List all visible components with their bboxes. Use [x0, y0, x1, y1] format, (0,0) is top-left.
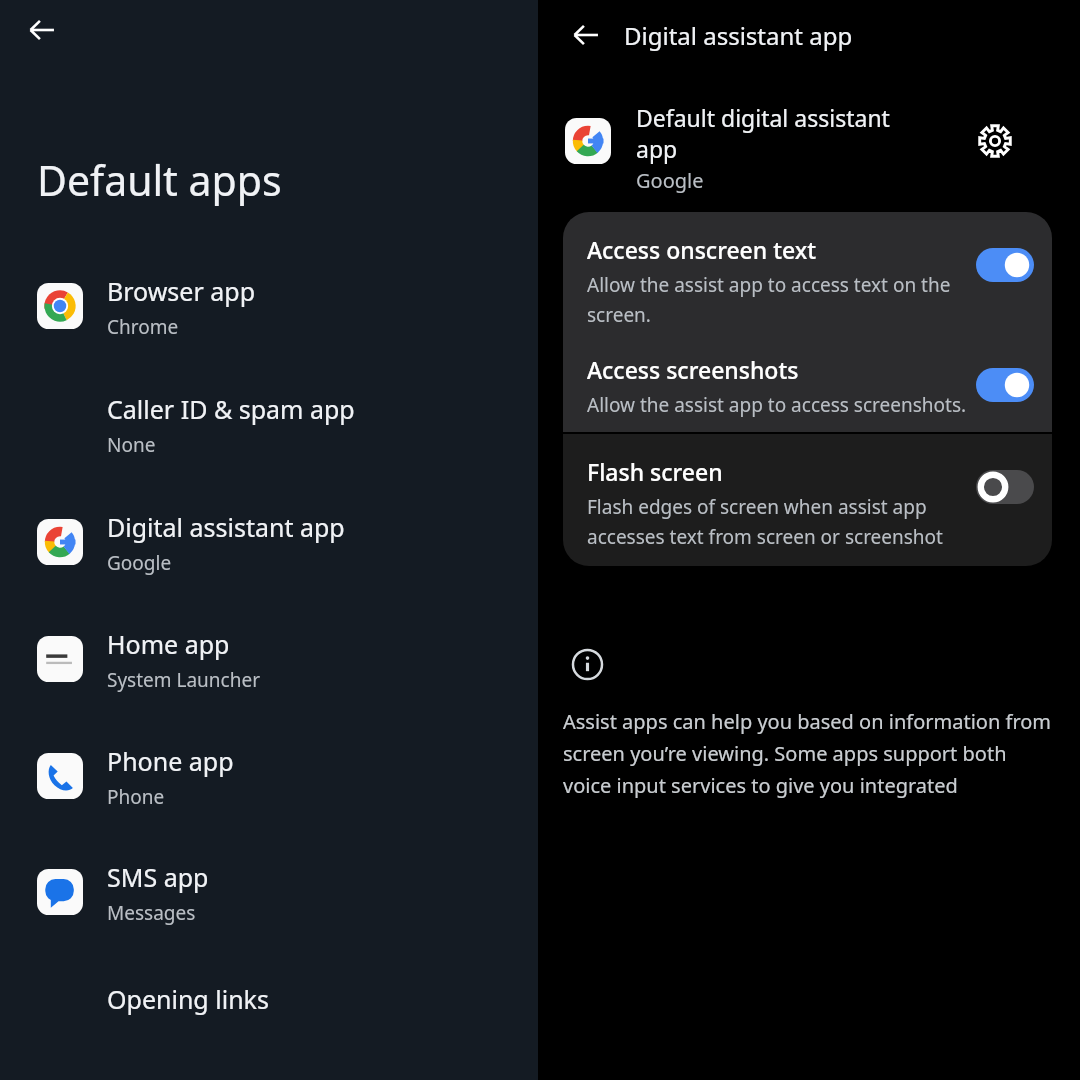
- button[interactable]: Home app: [0, 623, 538, 719]
- staticText: Google: [107, 550, 172, 576]
- staticText: None: [107, 432, 156, 458]
- staticText: voice input services to give you integra…: [563, 772, 1063, 799]
- button[interactable]: Back: [18, 6, 66, 54]
- staticText: System Launcher: [107, 667, 261, 693]
- button[interactable]: Caller ID & spam app: [0, 388, 538, 484]
- staticText: Messages: [107, 900, 196, 926]
- staticText: Phone: [107, 784, 165, 810]
- button[interactable]: Flash screen: [563, 434, 1052, 554]
- staticText: Default apps: [37, 152, 282, 208]
- staticText: app: [636, 133, 678, 164]
- staticText: Default digital assistant: [636, 102, 890, 133]
- staticText: screen you’re viewing. Some apps support…: [563, 740, 1063, 767]
- staticText: Digital assistant app: [107, 510, 345, 544]
- button[interactable]: Phone app: [0, 740, 538, 836]
- staticText: Google: [636, 167, 704, 194]
- staticText: Allow the assist app to access screensho…: [587, 392, 967, 418]
- staticText: Assist apps can help you based on inform…: [563, 708, 1063, 735]
- staticText: Home app: [107, 627, 230, 661]
- button[interactable]: Default digital assistant: [538, 95, 1080, 195]
- button[interactable]: Access screenshots: [563, 332, 1052, 422]
- button[interactable]: Settings: [970, 116, 1020, 166]
- staticText: Opening links: [107, 982, 269, 1016]
- staticText: Digital assistant app: [624, 19, 853, 52]
- staticText: Flash screen: [587, 456, 723, 487]
- button[interactable]: Access onscreen text: [563, 212, 1052, 332]
- staticText: Flash edges of screen when assist app: [587, 494, 927, 520]
- staticText: accesses text from screen or screenshot: [587, 524, 943, 550]
- staticText: Phone app: [107, 744, 234, 778]
- staticText: SMS app: [107, 860, 209, 894]
- button[interactable]: SMS app: [0, 856, 538, 952]
- staticText: Caller ID & spam app: [107, 392, 355, 426]
- staticText: screen.: [587, 302, 651, 328]
- button[interactable]: Opening links: [0, 962, 538, 1036]
- staticText: Chrome: [107, 314, 179, 340]
- staticText: Access screenshots: [587, 354, 799, 385]
- button[interactable]: Digital assistant app: [0, 506, 538, 602]
- staticText: Access onscreen text: [587, 234, 817, 265]
- staticText: Allow the assist app to access text on t…: [587, 272, 951, 298]
- button[interactable]: Back: [562, 11, 610, 59]
- button[interactable]: Browser app: [0, 270, 538, 366]
- staticText: Browser app: [107, 274, 256, 308]
